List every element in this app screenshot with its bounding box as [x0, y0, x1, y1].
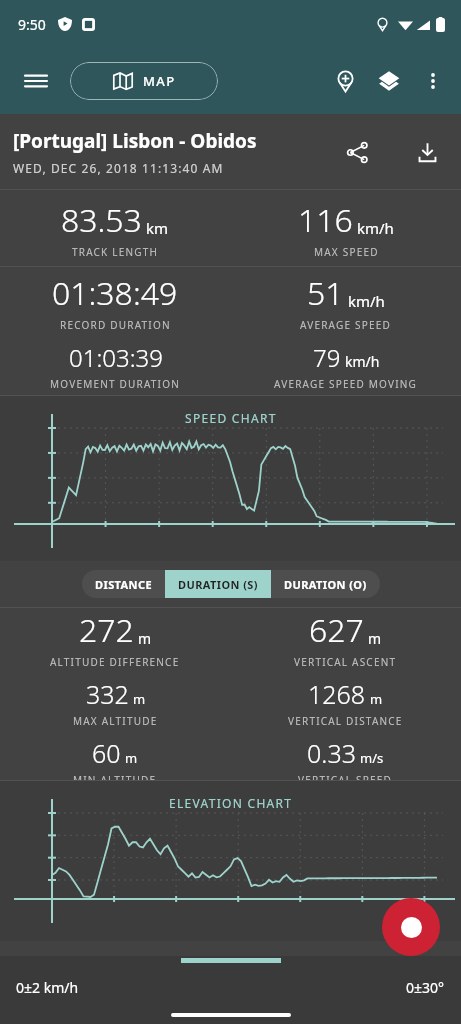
staticText: ELEVATION CHART: [169, 795, 293, 811]
button[interactable]: MAP: [70, 62, 218, 100]
button[interactable]: Layers: [367, 59, 411, 103]
button[interactable]: 51: [230, 267, 461, 395]
staticText: MAX ALTITUDE: [73, 714, 158, 728]
staticText: km/h: [348, 291, 385, 311]
button[interactable]: More options: [411, 59, 455, 103]
staticText: 79: [313, 341, 341, 374]
staticText: TRACK LENGTH: [72, 245, 159, 259]
button[interactable]: 627: [230, 608, 461, 780]
staticText: 332: [86, 677, 129, 711]
staticText: MOVEMENT DURATION: [50, 377, 181, 391]
staticText: DURATION (O): [284, 577, 367, 592]
staticText: WED, DEC 26, 2018 11:13:40 AM: [13, 160, 224, 176]
staticText: 83.53: [61, 198, 142, 242]
button[interactable]: Menu: [14, 59, 58, 103]
staticText: VERTICAL SPEED: [298, 773, 393, 780]
staticText: km: [146, 218, 169, 238]
staticText: MAP: [143, 72, 176, 90]
staticText: RECORD DURATION: [60, 318, 171, 332]
button[interactable]: DURATION (S): [165, 570, 271, 598]
staticText: m: [125, 749, 138, 767]
staticText: 9:50: [18, 15, 46, 34]
staticText: AVERAGE SPEED MOVING: [274, 377, 418, 391]
staticText: ALTITUDE DIFFERENCE: [50, 655, 180, 669]
staticText: 51: [307, 271, 344, 315]
staticText: 0.33: [307, 736, 356, 770]
staticText: 0±2 km/h: [16, 978, 79, 997]
staticText: m: [138, 629, 152, 648]
staticText: km/h: [357, 218, 394, 238]
button[interactable]: 83.53: [0, 198, 230, 259]
button[interactable]: 01:38:49: [0, 267, 230, 395]
button[interactable]: DISTANCE: [82, 570, 165, 598]
staticText: 01:03:39: [69, 341, 163, 374]
button[interactable]: Record: [382, 898, 440, 956]
staticText: 60: [92, 736, 121, 770]
staticText: VERTICAL DISTANCE: [288, 714, 403, 728]
staticText: DURATION (S): [178, 577, 258, 592]
staticText: DISTANCE: [95, 577, 152, 592]
staticText: MIN ALTITUDE: [73, 773, 157, 780]
staticText: MAX SPEED: [314, 245, 379, 259]
button[interactable]: DURATION (O): [271, 570, 380, 598]
staticText: AVERAGE SPEED: [300, 318, 391, 332]
button[interactable]: 272: [0, 608, 230, 780]
staticText: 272: [79, 608, 134, 652]
button[interactable]: Share: [333, 128, 381, 176]
staticText: 01:38:49: [52, 271, 178, 315]
button[interactable]: Add location: [323, 59, 367, 103]
staticText: VERTICAL ASCENT: [294, 655, 397, 669]
staticText: m: [133, 690, 146, 708]
staticText: m: [370, 690, 383, 708]
staticText: m/s: [360, 749, 384, 767]
staticText: SPEED CHART: [185, 410, 277, 426]
staticText: m: [368, 629, 382, 648]
staticText: 116: [298, 198, 353, 242]
staticText: 0±30°: [406, 978, 445, 997]
staticText: 1268: [308, 677, 366, 711]
button[interactable]: 116: [230, 198, 461, 259]
staticText: km/h: [345, 352, 380, 371]
button[interactable]: Download: [403, 128, 451, 176]
staticText: [Portugal] Lisbon - Obidos: [13, 128, 257, 154]
staticText: 627: [309, 608, 364, 652]
